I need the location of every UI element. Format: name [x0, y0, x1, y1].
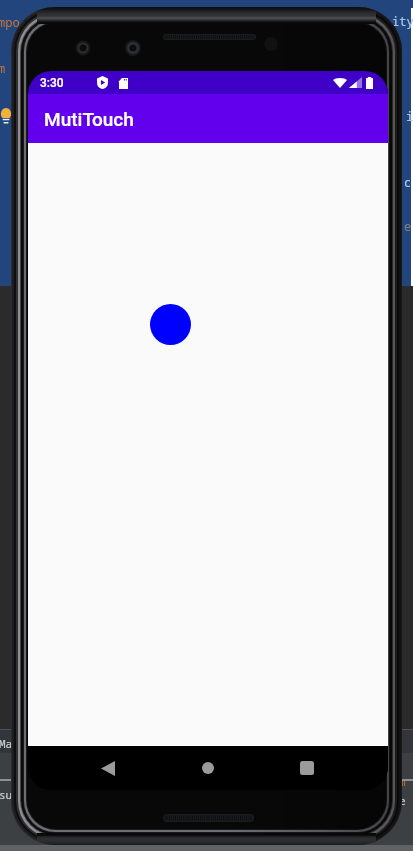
button[interactable]: Recents: [277, 746, 337, 790]
staticText: m: [0, 60, 6, 76]
button[interactable]: MutiTouch: [28, 94, 388, 143]
staticText: ity: [392, 13, 413, 29]
staticText: mpo: [0, 14, 20, 30]
staticText: e: [404, 218, 412, 234]
staticText: i: [406, 108, 413, 124]
button[interactable]: Home: [178, 746, 238, 790]
staticText: e: [399, 793, 406, 808]
staticText: su: [0, 787, 13, 802]
staticText: Ma: [0, 736, 13, 751]
staticText: MutiTouch: [44, 108, 134, 130]
button[interactable]: Back: [78, 746, 138, 790]
staticText: c: [404, 174, 412, 190]
staticText: 3:30: [40, 76, 64, 90]
staticText: m: [399, 774, 406, 789]
